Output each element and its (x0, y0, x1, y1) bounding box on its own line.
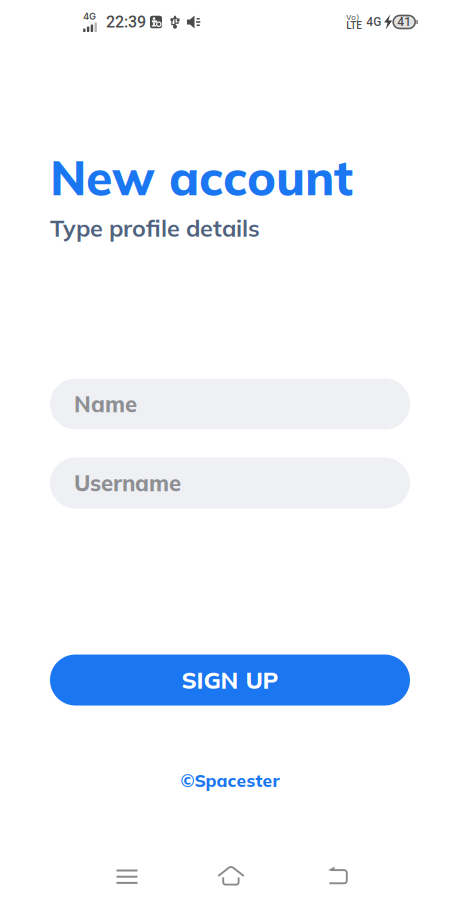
staticText: 41 (397, 15, 411, 29)
staticText: Vo) (346, 12, 359, 22)
staticText: 4G (366, 15, 381, 29)
staticText: Name (74, 390, 137, 418)
staticText: 4G (83, 11, 96, 22)
button[interactable]: SIGN UP (50, 654, 410, 705)
button[interactable]: Back (307, 846, 355, 900)
staticText: LTE (346, 20, 362, 31)
staticText: Username (74, 469, 181, 497)
staticText: Type profile details (50, 213, 260, 242)
staticText: 22:39 (106, 13, 146, 31)
button[interactable]: ©Spacester (180, 769, 279, 791)
button[interactable]: Recent apps (103, 846, 151, 900)
staticText: SIGN UP (181, 665, 278, 695)
button[interactable]: Home (205, 846, 253, 900)
staticText: New account (50, 147, 353, 207)
staticText: ©Spacester (180, 769, 279, 791)
